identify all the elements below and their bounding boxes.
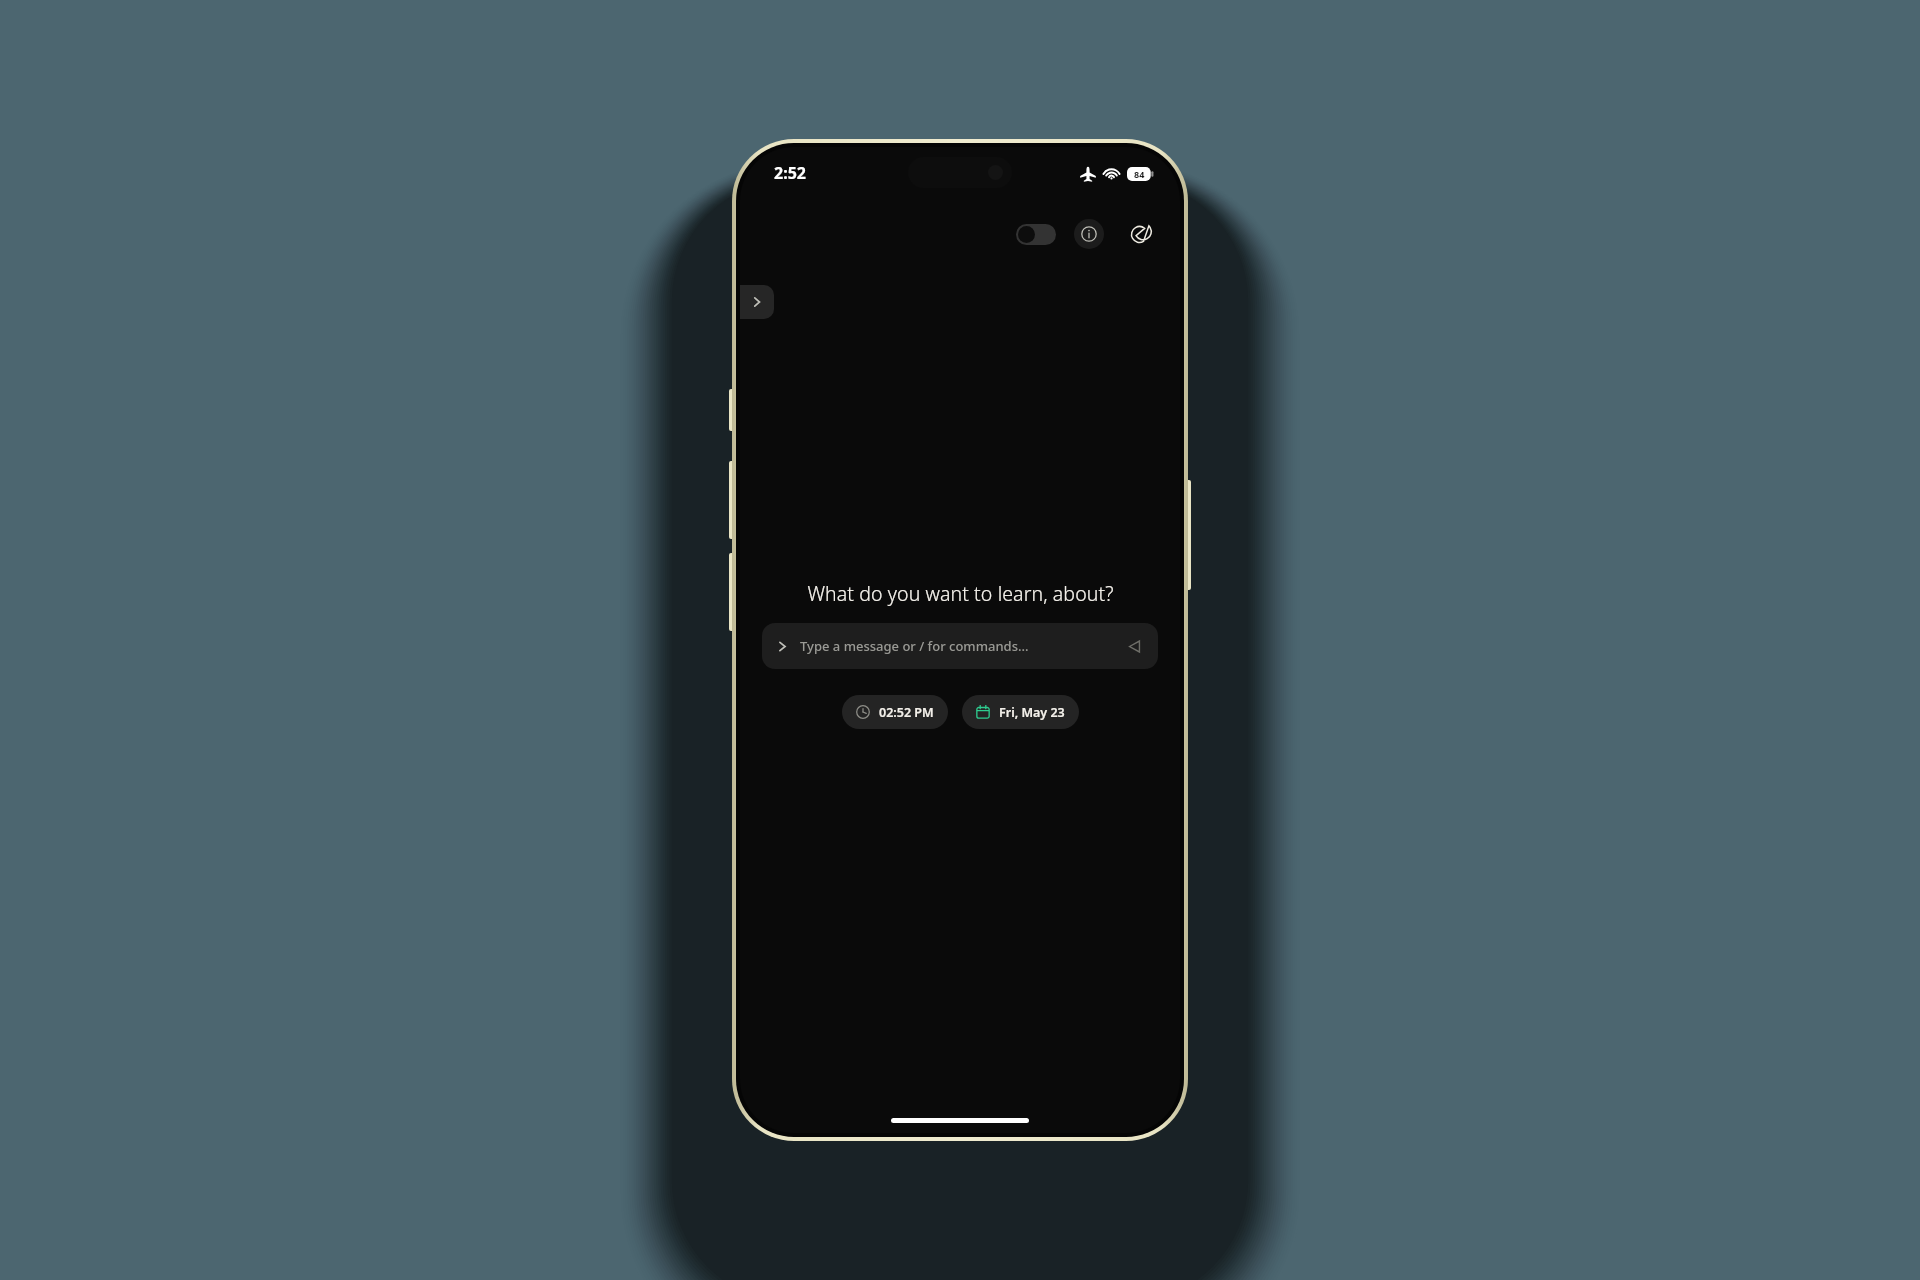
button[interactable]: Dark mode	[1124, 219, 1154, 249]
button[interactable]: Open sidebar	[740, 285, 774, 319]
button[interactable]: Information	[1074, 219, 1104, 249]
button[interactable]: Send	[1124, 636, 1144, 656]
button[interactable]: Toggle	[1016, 224, 1056, 245]
button[interactable]: Type a message or / for commands…	[762, 623, 1158, 669]
staticText: 2:52	[774, 162, 806, 184]
staticText: 02:52 PM	[879, 704, 934, 721]
button[interactable]: Fri, May 23	[962, 695, 1079, 729]
staticText: Fri, May 23	[999, 704, 1065, 721]
staticText: What do you want to learn, about?	[807, 580, 1114, 607]
staticText: Type a message or / for commands…	[800, 637, 1124, 655]
button[interactable]: 02:52 PM	[842, 695, 948, 729]
staticText: 84	[1134, 168, 1145, 180]
